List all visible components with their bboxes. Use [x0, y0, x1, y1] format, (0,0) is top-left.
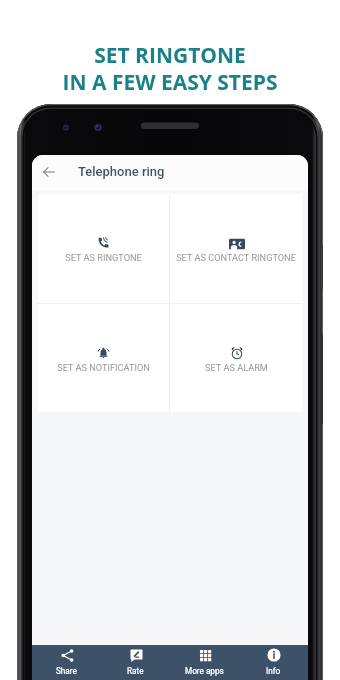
- staticText: Telephone ring: [78, 164, 165, 179]
- button[interactable]: SET AS NOTIFICATION: [38, 304, 169, 412]
- staticText: Share: [56, 666, 77, 676]
- button[interactable]: Rate: [101, 645, 170, 680]
- button[interactable]: Info: [239, 645, 308, 680]
- staticText: SET RINGTONE: [94, 42, 246, 69]
- button[interactable]: More apps: [170, 645, 239, 680]
- button[interactable]: SET AS CONTACT RINGTONE: [170, 194, 302, 303]
- staticText: SET AS ALARM: [205, 362, 268, 373]
- staticText: SET AS CONTACT RINGTONE: [176, 252, 296, 263]
- staticText: SET AS RINGTONE: [65, 252, 142, 263]
- button[interactable]: SET AS ALARM: [170, 304, 302, 412]
- staticText: More apps: [185, 666, 224, 676]
- button[interactable]: Share: [32, 645, 101, 680]
- staticText: Rate: [127, 666, 144, 676]
- staticText: Info: [266, 666, 281, 676]
- button[interactable]: Back: [35, 158, 63, 186]
- staticText: SET AS NOTIFICATION: [57, 362, 150, 373]
- button[interactable]: SET AS RINGTONE: [38, 194, 169, 303]
- staticText: IN A FEW EASY STEPS: [62, 69, 278, 96]
